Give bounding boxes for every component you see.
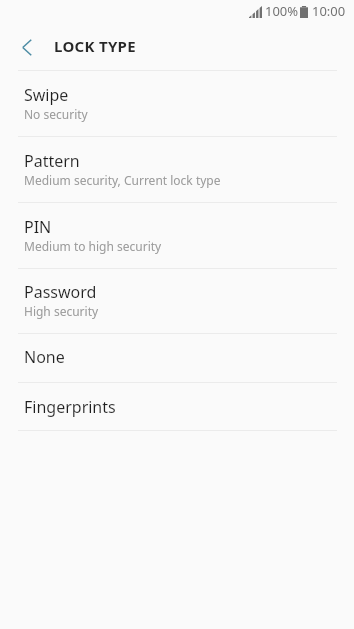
- other: Mobile signal: [249, 6, 262, 18]
- staticText: LOCK TYPE: [54, 36, 136, 56]
- button[interactable]: PIN: [0, 203, 354, 268]
- staticText: 100%: [265, 2, 299, 20]
- staticText: PIN: [24, 216, 52, 238]
- other: Battery full: [300, 6, 308, 18]
- staticText: Fingerprints: [24, 396, 116, 418]
- staticText: Medium to high security: [24, 238, 162, 254]
- staticText: Medium security, Current lock type: [24, 172, 221, 188]
- staticText: Pattern: [24, 150, 80, 172]
- button[interactable]: Password: [0, 269, 354, 333]
- staticText: Swipe: [24, 84, 69, 106]
- button[interactable]: None: [0, 334, 354, 382]
- staticText: Password: [24, 281, 97, 303]
- button[interactable]: Fingerprints: [0, 383, 354, 430]
- staticText: High security: [24, 303, 99, 319]
- button[interactable]: Navigate up: [11, 22, 43, 70]
- staticText: No security: [24, 106, 88, 122]
- staticText: None: [24, 346, 65, 368]
- button[interactable]: Swipe: [0, 71, 354, 136]
- button[interactable]: Pattern: [0, 137, 354, 202]
- staticText: 10:00: [312, 2, 346, 20]
